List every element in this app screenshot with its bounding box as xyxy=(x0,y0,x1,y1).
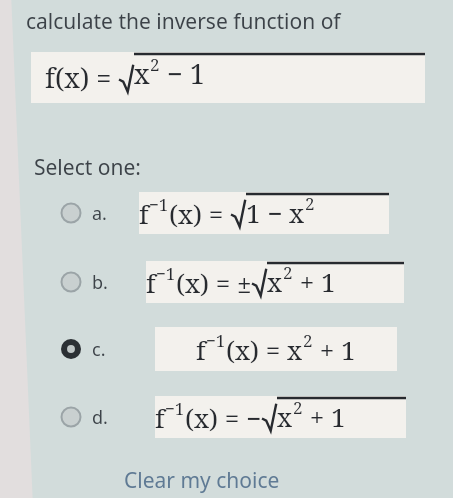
staticText: + 1 xyxy=(313,332,356,367)
staticText: + 1 xyxy=(303,399,346,434)
staticText: 2 xyxy=(283,261,293,284)
staticText: x xyxy=(134,55,150,92)
staticText: a. xyxy=(92,201,107,226)
staticText: Clear my choice xyxy=(124,466,280,495)
staticText: f xyxy=(196,332,206,367)
staticText: − 1 xyxy=(160,55,205,92)
button[interactable]: Option b. xyxy=(60,261,420,303)
staticText: calculate the inverse function of xyxy=(26,7,341,36)
button[interactable]: Option c. xyxy=(60,327,420,371)
button[interactable]: Option a. xyxy=(60,192,420,234)
staticText: −1 xyxy=(149,193,169,216)
other: Option d. xyxy=(60,406,82,428)
staticText: 2 xyxy=(150,53,160,76)
staticText: (x) = ± xyxy=(176,265,252,300)
staticText: 2 xyxy=(305,192,315,215)
staticText: 1 − x xyxy=(246,195,305,230)
other: Option a. xyxy=(60,202,82,224)
staticText: −1 xyxy=(156,262,176,285)
staticText: Select one: xyxy=(34,153,141,182)
staticText: f xyxy=(146,265,156,300)
staticText: f(x) = xyxy=(45,59,119,96)
staticText: d. xyxy=(92,405,108,430)
staticText: (x) = − xyxy=(185,400,262,435)
staticText: f xyxy=(139,196,149,231)
staticText: b. xyxy=(92,270,108,295)
button[interactable]: Clear my choice xyxy=(118,460,286,498)
staticText: + 1 xyxy=(293,264,336,299)
staticText: 2 xyxy=(303,329,313,352)
staticText: 2 xyxy=(293,396,303,419)
other: Option b. xyxy=(60,271,82,293)
staticText: x xyxy=(277,399,293,434)
staticText: −1 xyxy=(206,329,226,352)
other: Option c. xyxy=(60,338,82,360)
staticText: x xyxy=(267,264,283,299)
button[interactable]: Option d. xyxy=(60,396,420,438)
staticText: c. xyxy=(92,337,106,362)
staticText: (x) = xyxy=(169,196,231,231)
staticText: (x) = x xyxy=(226,332,303,367)
staticText: f xyxy=(155,400,165,435)
staticText: −1 xyxy=(165,397,185,420)
